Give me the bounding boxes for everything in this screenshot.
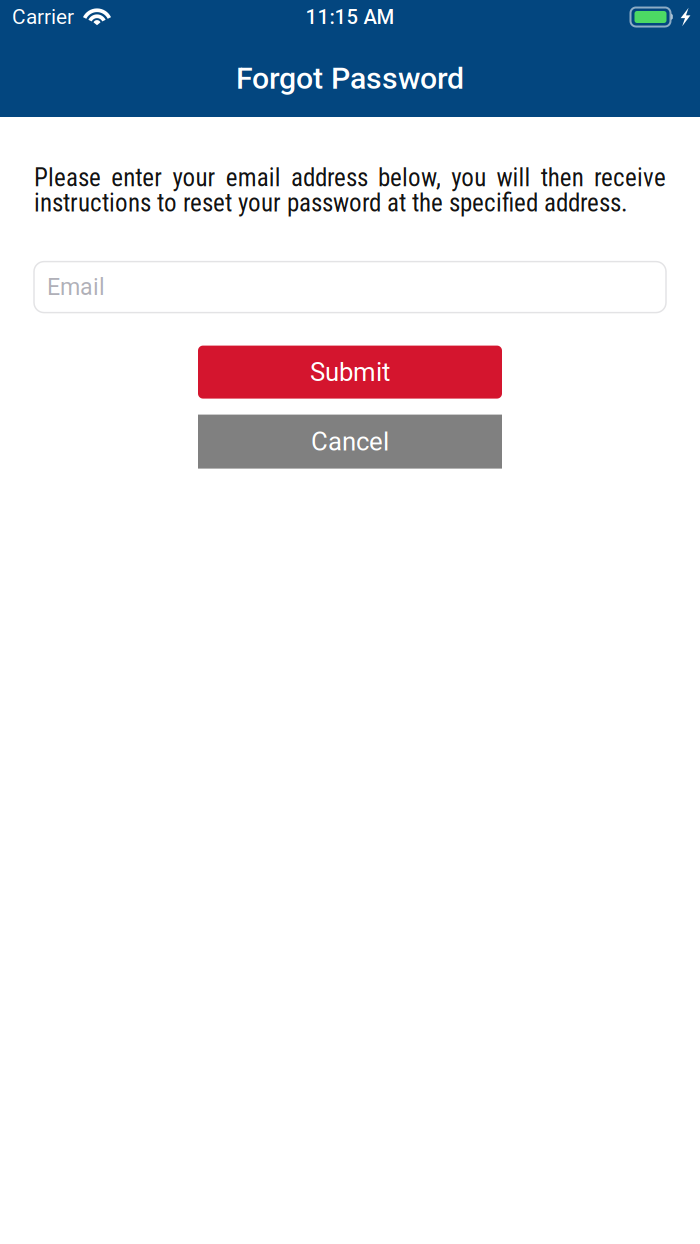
staticText: below, bbox=[378, 163, 441, 192]
staticText: Forgot Password bbox=[236, 61, 464, 96]
staticText: address bbox=[291, 163, 368, 192]
staticText: receive bbox=[594, 163, 666, 192]
button[interactable]: Cancel bbox=[198, 415, 502, 469]
staticText: Carrier bbox=[12, 5, 74, 29]
staticText: you bbox=[451, 163, 486, 192]
staticText: email bbox=[226, 163, 281, 192]
button[interactable]: Email bbox=[34, 262, 666, 313]
button[interactable]: Submit bbox=[198, 346, 502, 399]
staticText: then bbox=[541, 163, 584, 192]
staticText: Please bbox=[34, 163, 101, 192]
staticText: Submit bbox=[310, 357, 390, 387]
staticText: Cancel bbox=[311, 426, 389, 457]
staticText: will bbox=[497, 163, 531, 192]
staticText: enter bbox=[111, 163, 162, 192]
staticText: Email bbox=[47, 273, 105, 301]
staticText: 11:15 AM bbox=[305, 5, 394, 29]
staticText: instructions to reset your password at t… bbox=[34, 188, 628, 218]
staticText: your bbox=[172, 163, 215, 192]
